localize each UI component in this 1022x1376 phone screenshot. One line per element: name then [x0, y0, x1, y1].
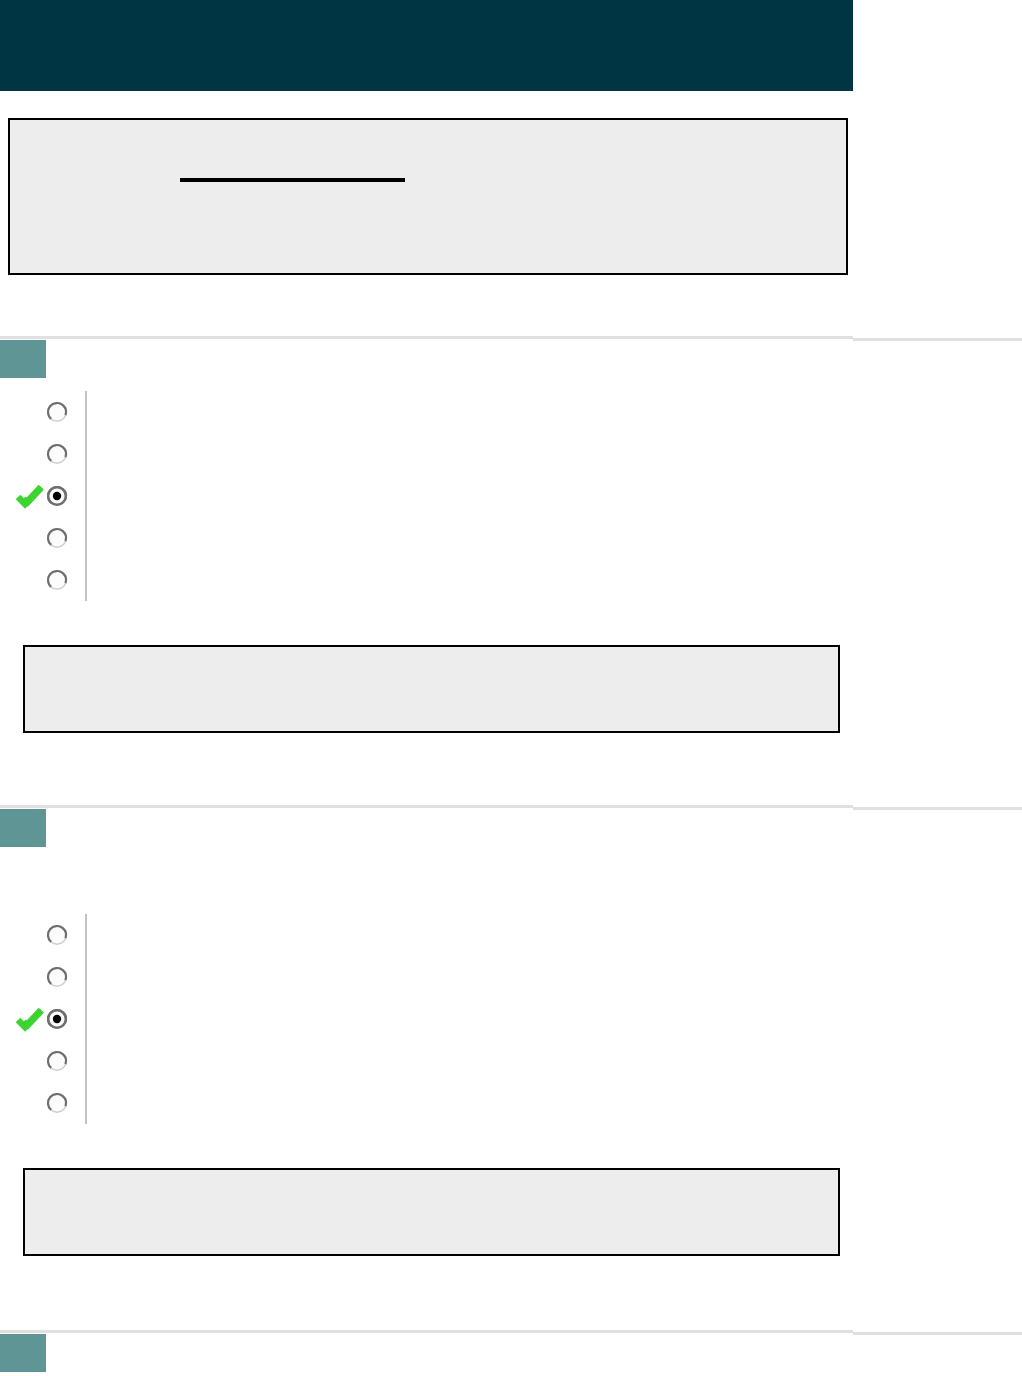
button[interactable] — [8, 559, 840, 601]
button[interactable] — [8, 391, 840, 433]
button[interactable] — [8, 1040, 840, 1082]
button[interactable] — [8, 998, 840, 1040]
button[interactable] — [8, 433, 840, 475]
button[interactable] — [8, 517, 840, 559]
button[interactable] — [8, 1082, 840, 1124]
button[interactable] — [8, 956, 840, 998]
button[interactable] — [8, 475, 840, 517]
button[interactable] — [8, 914, 840, 956]
